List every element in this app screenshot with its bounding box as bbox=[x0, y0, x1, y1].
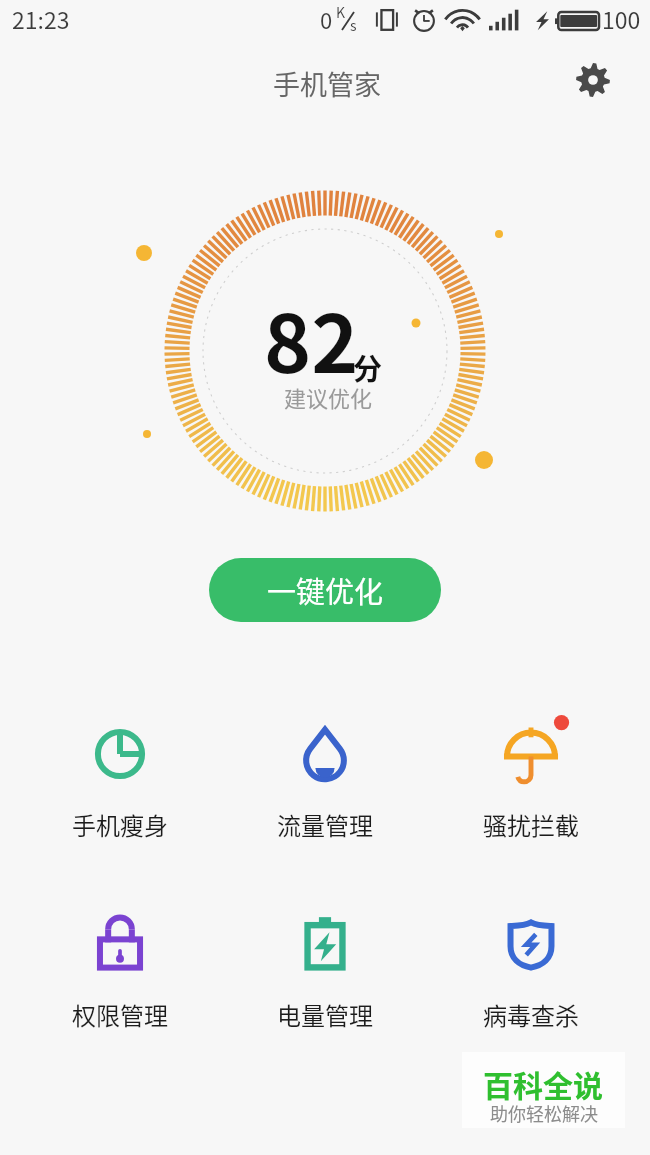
staticText: 0 bbox=[320, 3, 333, 35]
staticText: 百科全说 bbox=[483, 1062, 603, 1105]
staticText: K bbox=[336, 2, 346, 22]
button[interactable]: 流量管理 bbox=[240, 714, 410, 839]
staticText: 82 bbox=[264, 280, 359, 396]
button[interactable]: Settings bbox=[571, 58, 615, 102]
staticText: s bbox=[350, 15, 357, 35]
staticText: 电量管理 bbox=[277, 997, 373, 1032]
button[interactable]: 骚扰拦截 bbox=[446, 714, 616, 839]
staticText: 助你轻松解决 bbox=[490, 1100, 598, 1126]
staticText: 一键优化 bbox=[267, 569, 384, 611]
button[interactable]: 病毒查杀 bbox=[446, 905, 616, 1029]
staticText: 手机管家 bbox=[273, 64, 381, 103]
staticText: 21:23 bbox=[12, 2, 70, 35]
staticText: 分 bbox=[353, 346, 383, 388]
staticText: 权限管理 bbox=[72, 997, 168, 1032]
staticText: 100 bbox=[602, 2, 641, 35]
staticText: 建议优化 bbox=[284, 381, 373, 413]
staticText: 骚扰拦截 bbox=[483, 807, 579, 842]
staticText: 流量管理 bbox=[277, 807, 373, 842]
button[interactable]: 一键优化 bbox=[209, 558, 441, 622]
button[interactable]: 电量管理 bbox=[240, 905, 410, 1029]
staticText: 病毒查杀 bbox=[483, 997, 579, 1032]
staticText: 手机瘦身 bbox=[72, 807, 168, 842]
button[interactable]: 手机瘦身 bbox=[35, 714, 205, 839]
button[interactable]: 权限管理 bbox=[35, 905, 205, 1029]
